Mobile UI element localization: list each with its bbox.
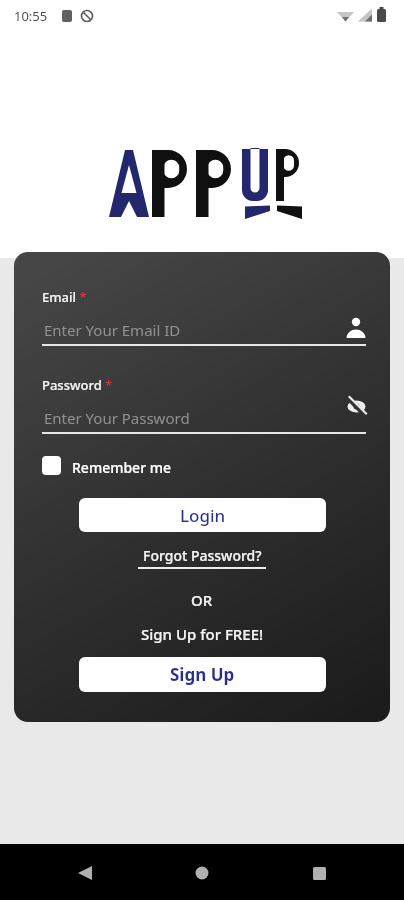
staticText: Sign Up for FREE! (141, 624, 264, 644)
staticText: Forgot Password? (143, 546, 262, 565)
staticText: Enter Your Password (44, 408, 190, 428)
staticText: 10:55 (14, 7, 48, 25)
staticText: Remember me (72, 458, 172, 477)
staticText: Sign Up (170, 663, 235, 686)
staticText: OR (191, 590, 213, 610)
staticText: Login (180, 504, 226, 527)
staticText: Password * (42, 376, 113, 394)
staticText: Enter Your Email ID (44, 320, 181, 340)
staticText: Email * (42, 288, 87, 306)
